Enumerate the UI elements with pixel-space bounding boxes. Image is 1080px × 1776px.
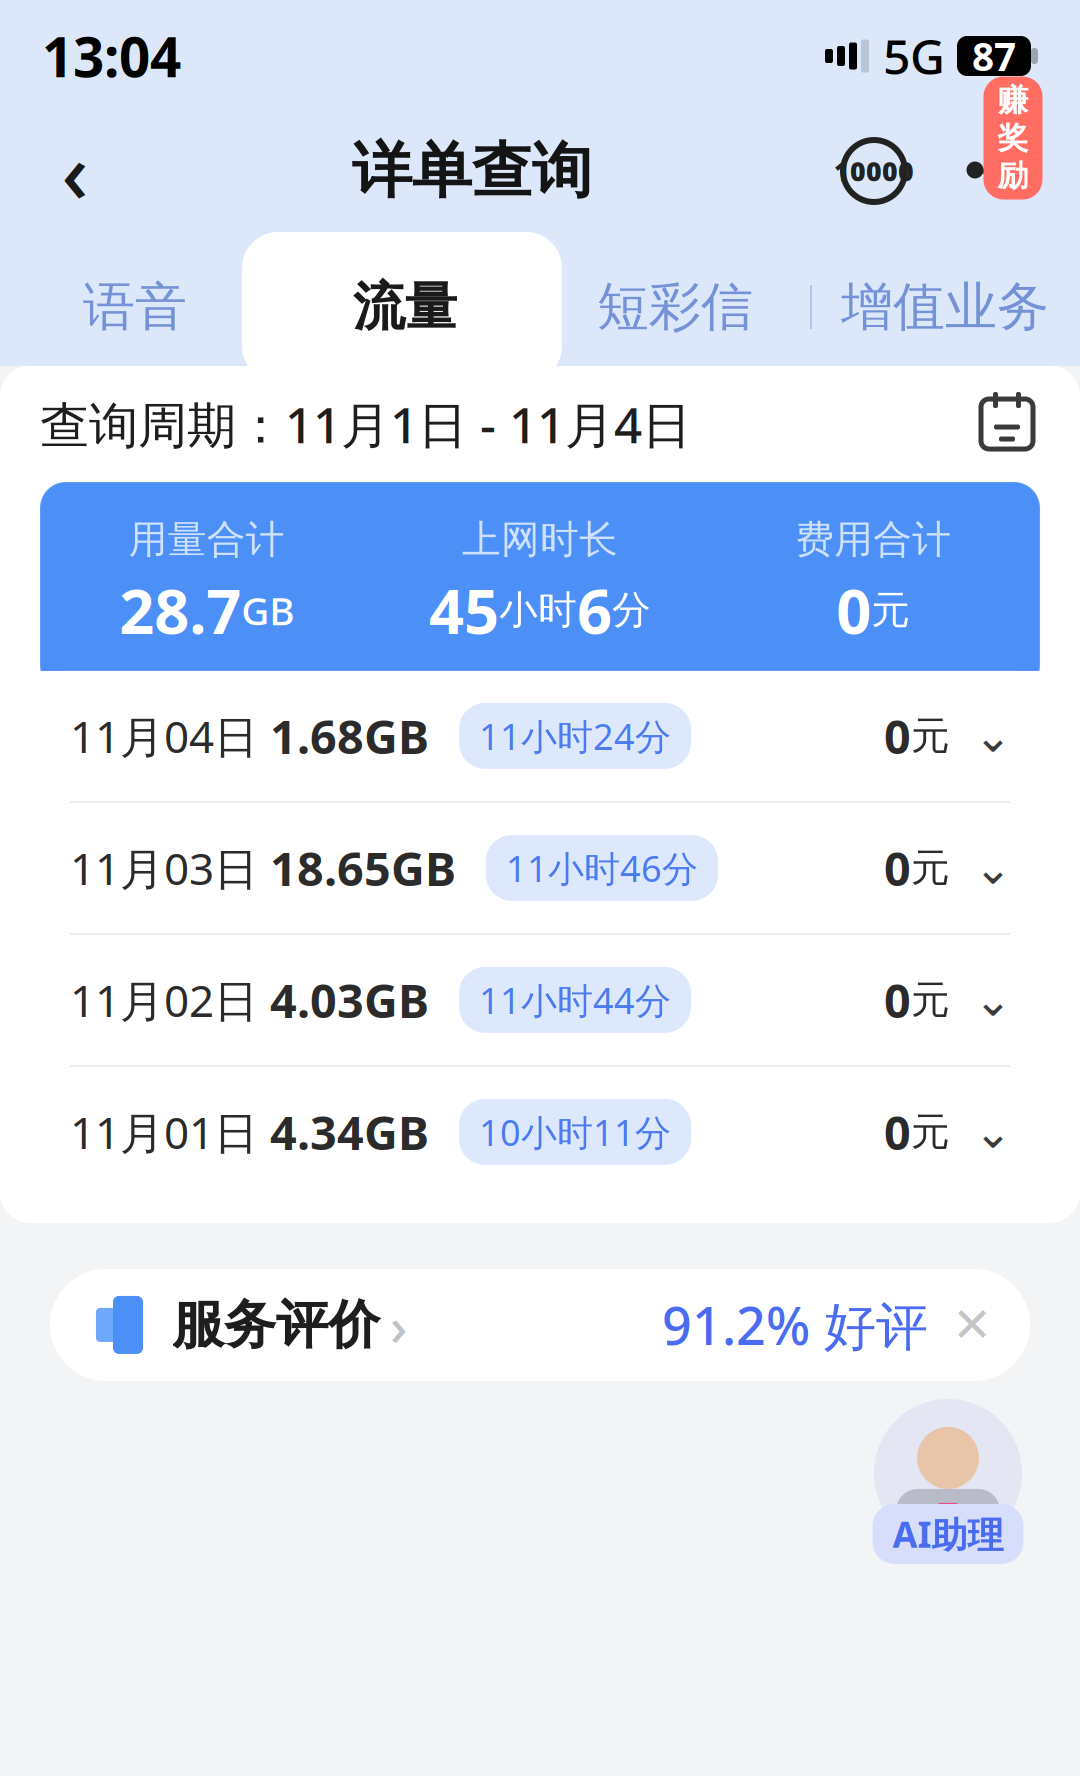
staticText: 10小时11分 [479, 1108, 671, 1156]
staticText: 详单查询 [352, 134, 592, 208]
staticText: 45 [429, 569, 499, 651]
staticText: 0 [836, 569, 871, 651]
button[interactable]: 返回 [40, 131, 110, 211]
staticText: 分 [612, 586, 651, 634]
staticText: 18.65GB [258, 837, 456, 899]
staticText: 91.2% 好评 [662, 1290, 928, 1359]
staticText: 用量合计 [129, 516, 285, 563]
staticText: 11小时46分 [506, 844, 698, 892]
staticText: 0 [884, 1101, 911, 1163]
button[interactable]: AI助理 [868, 1387, 1028, 1559]
staticText: 0 [884, 837, 911, 899]
staticText: 查询周期：11月1日 - 11月4日 [40, 391, 691, 457]
staticText: ✕ [952, 1298, 992, 1352]
staticText: 小时 [499, 586, 577, 634]
button[interactable]: 11月01日 [40, 1067, 1040, 1197]
staticText: AI助理 [892, 1510, 1003, 1558]
staticText: 赚奖励 [997, 81, 1028, 194]
staticText: 费用合计 [795, 516, 951, 563]
button[interactable]: 短彩信 [540, 252, 810, 362]
staticText: 元 [911, 976, 950, 1024]
staticText: 5G [883, 24, 945, 88]
staticText: ⌄ [974, 974, 1012, 1026]
staticText: 语音 [83, 275, 187, 339]
staticText: ⌄ [974, 710, 1012, 762]
staticText: 服务评价 [172, 1293, 380, 1357]
staticText: ⌄ [974, 842, 1012, 894]
staticText: 11月01日 [70, 1103, 258, 1161]
button[interactable]: 11月03日 [40, 803, 1040, 933]
button[interactable]: 11月02日 [40, 935, 1040, 1065]
button[interactable]: 增值业务 [810, 252, 1080, 362]
button[interactable]: 流量 [270, 252, 540, 362]
staticText: GB [241, 584, 294, 636]
staticText: 元 [911, 844, 950, 892]
button[interactable]: 选择日期 [974, 391, 1040, 457]
staticText: 4.34GB [258, 1101, 429, 1163]
staticText: 11月03日 [70, 839, 258, 897]
staticText: 11小时24分 [479, 712, 671, 760]
staticText: 1.68GB [258, 705, 429, 767]
staticText: 13:04 [42, 20, 181, 92]
staticText: 11小时44分 [479, 976, 671, 1024]
staticText: 4.03GB [258, 969, 429, 1031]
staticText: › [390, 1289, 407, 1360]
staticText: 元 [911, 712, 950, 760]
staticText: 10000 [834, 153, 914, 189]
staticText: 短彩信 [597, 275, 753, 339]
button[interactable]: 分享赚奖励 [944, 123, 1040, 219]
staticText: 11月04日 [70, 707, 258, 765]
staticText: 28.7 [119, 569, 241, 651]
staticText: 元 [871, 586, 910, 634]
staticText: 增值业务 [841, 275, 1049, 339]
staticText: 6 [577, 569, 612, 651]
staticText: 流量 [353, 275, 457, 339]
staticText: 0 [884, 969, 911, 1031]
staticText: 11月02日 [70, 971, 258, 1029]
staticText: ‹ [61, 116, 88, 226]
button[interactable]: 11月04日 [40, 671, 1040, 801]
staticText: 上网时长 [462, 516, 618, 563]
staticText: ⌄ [974, 1106, 1012, 1158]
button[interactable]: 服务评价 [50, 1269, 1030, 1381]
button[interactable]: 客服 [834, 131, 914, 211]
staticText: 元 [911, 1108, 950, 1156]
staticText: 0 [884, 705, 911, 767]
button[interactable]: 语音 [0, 252, 270, 362]
staticText: 87 [972, 30, 1016, 82]
